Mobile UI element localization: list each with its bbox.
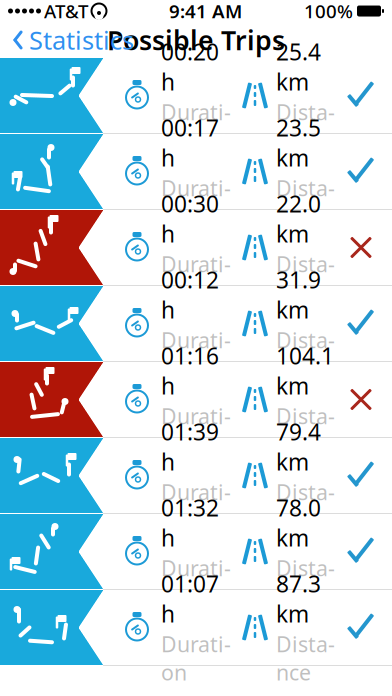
staticText: Duration	[161, 250, 231, 306]
staticText: 00:12 h	[161, 265, 219, 325]
staticText: 104.1 km	[276, 341, 334, 401]
staticText: 25.4 km	[276, 37, 321, 97]
staticText: 22.0 km	[276, 189, 321, 249]
button[interactable]: 01:39 h	[0, 438, 392, 514]
staticText: 100%	[304, 0, 353, 23]
staticText: 31.9 km	[276, 265, 321, 325]
staticText: 9:41 AM	[169, 0, 242, 23]
staticText: Duration	[161, 478, 231, 534]
staticText: Distance	[276, 402, 335, 458]
staticText: 79.4 km	[276, 417, 321, 477]
staticText: Distance	[276, 326, 335, 382]
staticText: Duration	[161, 554, 231, 610]
button[interactable]: 00:20 h	[0, 58, 392, 134]
staticText: Duration	[161, 630, 231, 686]
staticText: Duration	[161, 402, 231, 458]
staticText: Duration	[161, 98, 231, 154]
staticText: 01:07 h	[161, 569, 219, 629]
staticText: 01:32 h	[161, 493, 219, 553]
staticText: 23.5 km	[276, 113, 321, 173]
staticText: 00:30 h	[161, 189, 219, 249]
staticText: Distance	[276, 478, 335, 534]
button[interactable]: 00:12 h	[0, 286, 392, 362]
button[interactable]: 01:32 h	[0, 514, 392, 590]
button[interactable]: Statistics	[0, 22, 146, 58]
staticText: Distance	[276, 98, 335, 154]
staticText: Possible Trips	[107, 22, 285, 58]
staticText: AT&T	[44, 0, 88, 23]
staticText: Duration	[161, 326, 231, 382]
staticText: 01:16 h	[161, 341, 219, 401]
staticText: Duration	[161, 174, 231, 230]
staticText: 87.3 km	[276, 569, 321, 629]
staticText: Distance	[276, 250, 335, 306]
staticText: Statistics	[29, 23, 134, 57]
staticText: Distance	[276, 554, 335, 610]
button[interactable]: 00:30 h	[0, 210, 392, 286]
staticText: Distance	[276, 630, 335, 686]
staticText: 00:17 h	[161, 113, 219, 173]
staticText: 01:39 h	[161, 417, 219, 477]
staticText: 00:20 h	[161, 37, 219, 97]
button[interactable]: 00:17 h	[0, 134, 392, 210]
button[interactable]: 01:07 h	[0, 590, 392, 666]
button[interactable]: 01:16 h	[0, 362, 392, 438]
staticText: Distance	[276, 174, 335, 230]
staticText: 78.0 km	[276, 493, 321, 553]
